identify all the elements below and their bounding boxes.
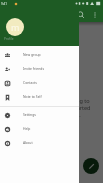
staticText: 9:41: [1, 2, 7, 6]
button[interactable]: Profile: [6, 18, 24, 36]
staticText: Invite friends: [23, 66, 45, 71]
button[interactable]: Note to Self: [0, 90, 79, 104]
staticText: Note to Self: [23, 94, 42, 99]
button[interactable]: Settings: [0, 108, 79, 122]
staticText: m: [11, 21, 20, 33]
staticText: Settings: [23, 112, 36, 117]
staticText: Give your inbox something to write home …: [11, 97, 92, 118]
button[interactable]: More options: [88, 8, 101, 21]
staticText: About: [23, 140, 33, 145]
button[interactable]: Help: [0, 122, 79, 136]
staticText: New group: [23, 52, 41, 57]
button[interactable]: Invite friends: [0, 62, 79, 76]
staticText: Help: [23, 126, 31, 131]
button[interactable]: New message: [83, 158, 99, 174]
button[interactable]: Search: [74, 8, 87, 21]
staticText: Contacts: [23, 80, 37, 85]
button[interactable]: New group: [0, 48, 79, 62]
staticText: Profile: [4, 37, 14, 41]
button[interactable]: About: [0, 136, 79, 150]
button[interactable]: Contacts: [0, 76, 79, 90]
